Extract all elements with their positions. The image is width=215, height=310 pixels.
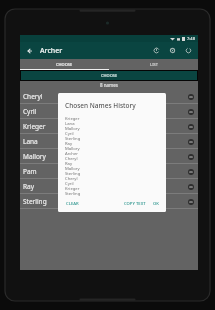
staticText: Cyril <box>65 131 74 136</box>
staticText: Krieger <box>65 116 80 121</box>
button[interactable]: COPY TEXT <box>123 199 147 209</box>
button[interactable]: CLEAR <box>65 199 80 209</box>
button[interactable]: Cheryl <box>20 89 198 103</box>
staticText: 7:48 <box>187 36 195 41</box>
button[interactable]: Krieger <box>20 119 198 133</box>
staticText: Lana <box>65 121 75 126</box>
button[interactable]: Remove Sterling <box>185 196 196 207</box>
button[interactable]: Remove Krieger <box>185 121 196 132</box>
button[interactable]: Remove Pam <box>185 166 196 177</box>
button[interactable]: Settings <box>167 45 178 56</box>
button[interactable]: Refresh <box>183 45 194 56</box>
button[interactable]: LIST <box>109 59 198 70</box>
staticText: Ray <box>23 182 35 191</box>
button[interactable]: CHOOSE <box>21 71 197 80</box>
staticText: Cyril <box>23 107 37 116</box>
button[interactable]: Navigate up <box>24 45 36 57</box>
staticText: Sterling <box>65 191 81 196</box>
staticText: Krieger <box>23 122 46 131</box>
button[interactable]: Sterling <box>20 194 198 208</box>
staticText: OK <box>153 201 159 207</box>
staticText: Mallory <box>65 146 80 151</box>
staticText: Sterling <box>65 171 81 176</box>
staticText: CHOOSE <box>101 73 118 78</box>
button[interactable]: Remove Cyril <box>185 106 196 117</box>
button[interactable]: CHOOSE <box>20 59 109 70</box>
staticText: Cheryl <box>65 156 78 161</box>
staticText: CLEAR <box>66 201 79 207</box>
button[interactable]: Cyril <box>20 104 198 118</box>
button[interactable]: Remove Ray <box>185 181 196 192</box>
button[interactable]: Remove Lana <box>185 136 196 147</box>
staticText: COPY TEXT <box>124 201 146 207</box>
staticText: Mallory <box>65 126 80 131</box>
staticText: Cheryl <box>23 92 43 101</box>
staticText: 8 names <box>100 82 118 88</box>
button[interactable]: History <box>151 45 162 56</box>
staticText: Sterling <box>23 197 47 206</box>
staticText: Sterling <box>65 136 81 141</box>
staticText: Pam <box>23 167 37 176</box>
button[interactable]: OK <box>152 199 160 209</box>
staticText: LIST <box>150 62 158 67</box>
staticText: Archer <box>65 151 79 156</box>
button[interactable]: Pam <box>20 164 198 178</box>
staticText: Archer <box>40 46 63 56</box>
staticText: Krieger <box>65 186 80 191</box>
button[interactable]: Lana <box>20 134 198 148</box>
staticText: Mallory <box>23 152 46 161</box>
staticText: CHOOSE <box>56 62 73 67</box>
staticText: Ray <box>65 161 73 166</box>
button[interactable]: Mallory <box>20 149 198 163</box>
button[interactable]: Ray <box>20 179 198 193</box>
staticText: Lana <box>23 137 38 146</box>
staticText: Cyril <box>65 181 74 186</box>
staticText: Cheryl <box>65 176 78 181</box>
staticText: Ray <box>65 141 73 146</box>
button[interactable]: Remove Mallory <box>185 151 196 162</box>
button[interactable]: Remove Cheryl <box>185 91 196 102</box>
staticText: Mallory <box>65 166 80 171</box>
staticText: Chosen Names History <box>65 101 136 110</box>
